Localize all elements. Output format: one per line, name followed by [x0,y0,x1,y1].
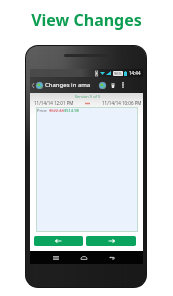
button[interactable]: Delete [108,77,117,93]
button[interactable]: Navigate up [30,77,36,93]
staticText: $514.98 [64,108,79,113]
staticText: 14:44 [129,70,141,76]
button[interactable]: More options [119,77,127,93]
staticText: Changes in ama [45,81,91,89]
staticText: Version 5 of 5 [31,94,144,99]
staticText: $622.44 [49,108,64,113]
staticText: 11/14/14 12:01 PM [34,100,74,106]
button[interactable]: Home [78,251,90,264]
button[interactable]: Back [106,251,118,264]
staticText: Price: [37,108,49,113]
button[interactable]: Previous change [34,236,83,246]
button[interactable]: Open in browser [98,77,107,93]
staticText: View Changes [0,9,173,31]
button[interactable]: Recent apps [50,251,62,264]
staticText: 11/14/14 10:06 PM [102,100,142,106]
staticText: 96% [114,71,122,76]
button[interactable]: Next change [86,236,136,246]
